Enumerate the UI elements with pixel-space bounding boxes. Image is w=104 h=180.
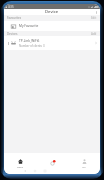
staticText: TP-Link_WiFi6: [19, 39, 40, 43]
button[interactable]: Edit: [91, 16, 97, 20]
button[interactable]: My Favourite: [4, 21, 100, 31]
staticText: 4:35: [8, 5, 14, 9]
staticText: Tools: [17, 165, 23, 168]
staticText: Number of clients: 3: [19, 44, 45, 48]
staticText: Favourites: [7, 16, 22, 20]
staticText: Device: [45, 9, 59, 15]
button[interactable]: Recents: [43, 169, 47, 173]
staticText: My Favourite: [19, 24, 39, 28]
button[interactable]: Back: [23, 169, 27, 173]
button[interactable]: TP-Link_WiFi6: [4, 36, 100, 50]
button[interactable]: Home: [33, 169, 37, 173]
button[interactable]: Me: [68, 153, 100, 168]
button[interactable]: More options: [92, 9, 100, 15]
staticText: Me: [82, 165, 86, 168]
button[interactable]: Wi-Fi: [36, 153, 68, 168]
button[interactable]: Add: [91, 32, 97, 36]
staticText: Devices: [7, 32, 18, 36]
button[interactable]: Tools: [4, 153, 36, 168]
